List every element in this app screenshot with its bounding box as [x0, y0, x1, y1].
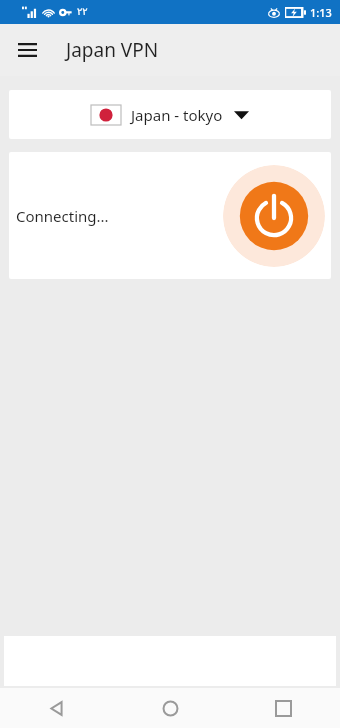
button[interactable]: Back — [0, 688, 114, 728]
button[interactable]: Connect VPN — [223, 165, 325, 267]
staticText: Japan - tokyo — [131, 105, 223, 125]
button[interactable]: Recent apps — [227, 688, 340, 728]
staticText: ٢٢ — [77, 6, 88, 18]
staticText: Japan VPN — [66, 37, 159, 63]
button[interactable]: Japan - tokyo — [9, 90, 331, 139]
button[interactable]: Open navigation menu — [8, 31, 46, 69]
button[interactable]: Home — [114, 688, 227, 728]
staticText: Connecting... — [16, 206, 109, 226]
staticText: 1:13 — [310, 5, 332, 20]
